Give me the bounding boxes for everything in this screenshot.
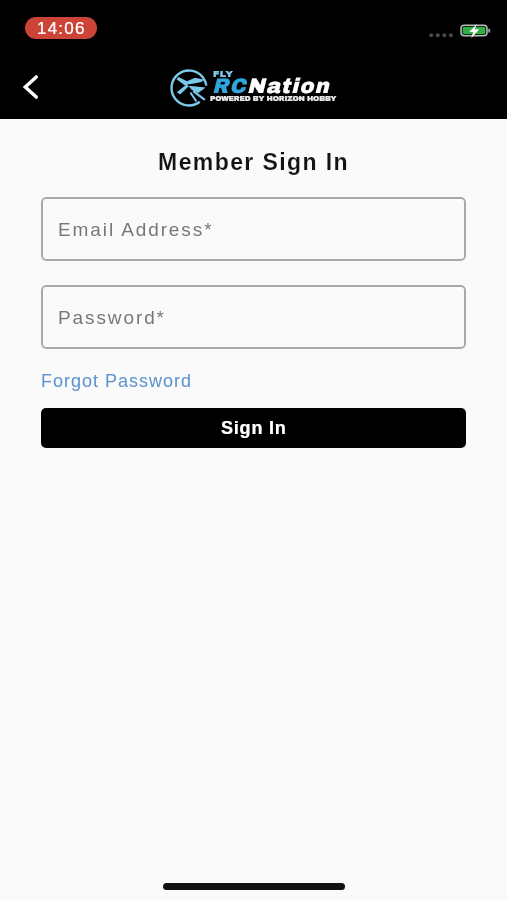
button[interactable]: Email Address* [41, 197, 466, 261]
staticText: Nation [247, 75, 330, 98]
staticText: Sign In [221, 418, 287, 438]
button[interactable]: Back [9, 65, 53, 109]
staticText: Password* [58, 307, 166, 328]
staticText: Email Address* [58, 219, 214, 240]
button[interactable]: Sign In [41, 408, 466, 448]
staticText: Member Sign In [0, 149, 507, 175]
staticText: FLY [213, 69, 234, 79]
staticText: RC [212, 75, 247, 98]
staticText: POWERED BY HORIZON HOBBY [210, 94, 337, 102]
button[interactable]: Password* [41, 285, 466, 349]
staticText: 14:06 [37, 19, 86, 38]
button[interactable]: Forgot Password [41, 371, 193, 391]
staticText: Forgot Password [41, 371, 193, 391]
